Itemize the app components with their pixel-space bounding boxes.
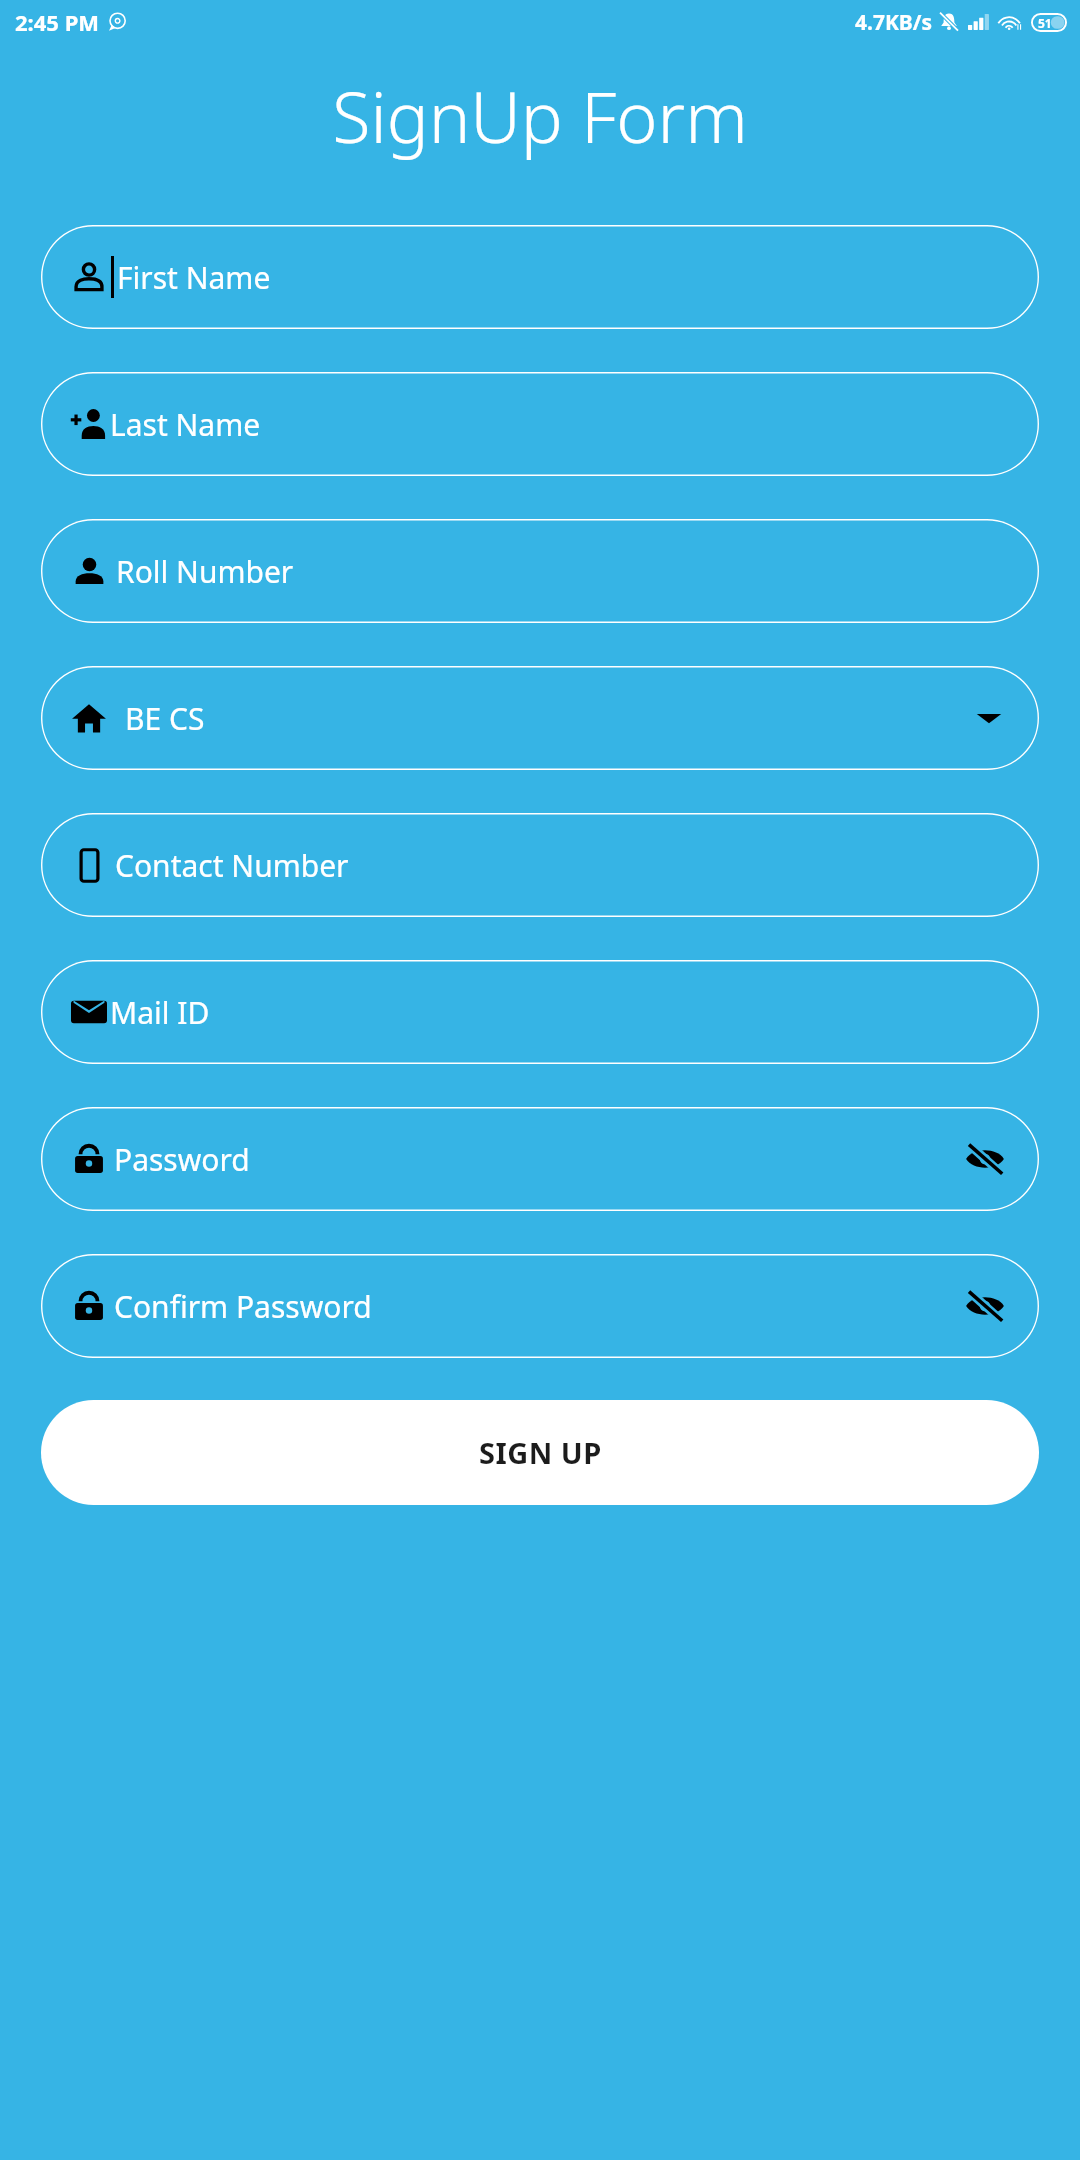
staticText: 51 [1038,15,1052,31]
button[interactable]: Open course dropdown [969,698,1009,738]
button[interactable]: Password [41,1107,1039,1211]
button[interactable]: BE CS [41,666,1039,770]
staticText: Mail ID [110,992,210,1033]
button[interactable]: Contact Number [41,813,1039,917]
staticText: 2:45 PM [15,7,100,37]
staticText: Last Name [110,404,261,445]
button[interactable]: SIGN UP [41,1400,1039,1505]
staticText: 4.7KB/s [855,8,933,37]
button[interactable]: First Name [41,225,1039,329]
button[interactable]: Roll Number [41,519,1039,623]
button[interactable]: Show confirm password [961,1282,1009,1330]
button[interactable]: Last Name [41,372,1039,476]
button[interactable]: Mail ID [41,960,1039,1064]
staticText: Contact Number [115,845,349,886]
staticText: Confirm Password [114,1286,372,1327]
staticText: Roll Number [116,551,294,592]
staticText: First Name [117,257,271,298]
button[interactable]: Show password [961,1135,1009,1183]
button[interactable]: Confirm Password [41,1254,1039,1358]
staticText: Password [114,1139,250,1180]
staticText: BE CS [125,698,205,739]
staticText: SIGN UP [479,1433,602,1472]
staticText: SignUp Form [0,68,1080,163]
